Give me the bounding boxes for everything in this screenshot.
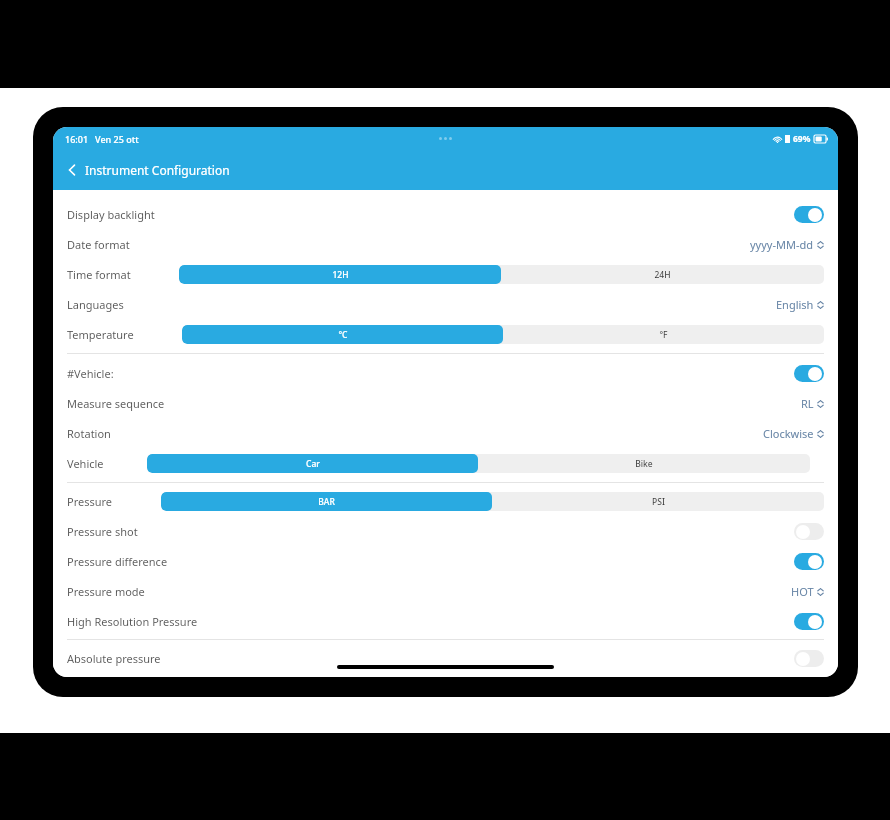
button[interactable]: Rotation — [53, 418, 838, 448]
staticText: #Vehicle: — [67, 366, 114, 381]
button[interactable]: Bike — [478, 454, 810, 473]
button[interactable]: Toggle off — [794, 650, 824, 667]
staticText: English — [776, 297, 814, 312]
staticText: Car — [306, 458, 320, 470]
button[interactable]: Pressure mode — [53, 576, 838, 606]
staticText: Bike — [635, 458, 653, 470]
staticText: Absolute pressure — [67, 651, 161, 666]
staticText: 16:01 Ven 25 ott — [65, 133, 139, 145]
staticText: PSI — [652, 496, 665, 508]
button[interactable]: Toggle on — [794, 365, 824, 382]
staticText: Date format — [67, 237, 130, 252]
button[interactable]: 24H — [501, 265, 824, 284]
button[interactable]: Date format — [53, 229, 838, 259]
button[interactable]: Toggle on — [794, 613, 824, 630]
button[interactable]: Car — [147, 454, 478, 473]
button[interactable]: Languages — [53, 289, 838, 319]
staticText: Rotation — [67, 426, 111, 441]
staticText: Vehicle — [67, 456, 104, 471]
button[interactable]: #Vehicle: — [53, 358, 838, 388]
staticText: Time format — [67, 267, 131, 282]
staticText: BAR — [318, 496, 335, 508]
button[interactable]: BAR — [161, 492, 492, 511]
staticText: yyyy-MM-dd — [750, 237, 814, 252]
staticText: Clockwise — [763, 426, 814, 441]
staticText: Measure sequence — [67, 396, 165, 411]
button[interactable]: °F — [503, 325, 824, 344]
staticText: Pressure shot — [67, 524, 138, 539]
staticText: Display backlight — [67, 207, 155, 222]
button[interactable]: °C — [182, 325, 503, 344]
staticText: 12H — [332, 269, 349, 281]
button[interactable]: Toggle on — [794, 553, 824, 570]
button[interactable]: Toggle on — [794, 206, 824, 223]
staticText: HOT — [791, 584, 814, 599]
staticText: Pressure mode — [67, 584, 145, 599]
button[interactable]: High Resolution Pressure — [53, 606, 838, 636]
staticText: Instrument Configuration — [85, 162, 230, 178]
button[interactable]: Back — [63, 158, 234, 182]
button[interactable]: 12H — [179, 265, 501, 284]
button[interactable]: Display backlight — [53, 199, 838, 229]
staticText: RL — [801, 396, 814, 411]
staticText: °F — [659, 329, 668, 341]
button[interactable]: Toggle off — [794, 523, 824, 540]
button[interactable]: Measure sequence — [53, 388, 838, 418]
button[interactable]: PSI — [492, 492, 824, 511]
other: Back — [67, 163, 77, 177]
staticText: 24H — [654, 269, 671, 281]
staticText: Pressure difference — [67, 554, 168, 569]
button[interactable]: Pressure difference — [53, 546, 838, 576]
staticText: °C — [338, 329, 348, 341]
staticText: Pressure — [67, 494, 113, 509]
staticText: Temperature — [67, 327, 134, 342]
staticText: 69% — [793, 133, 811, 145]
staticText: Languages — [67, 297, 124, 312]
button[interactable]: Absolute pressure — [53, 643, 838, 673]
staticText: High Resolution Pressure — [67, 614, 198, 629]
button[interactable]: Pressure shot — [53, 516, 838, 546]
